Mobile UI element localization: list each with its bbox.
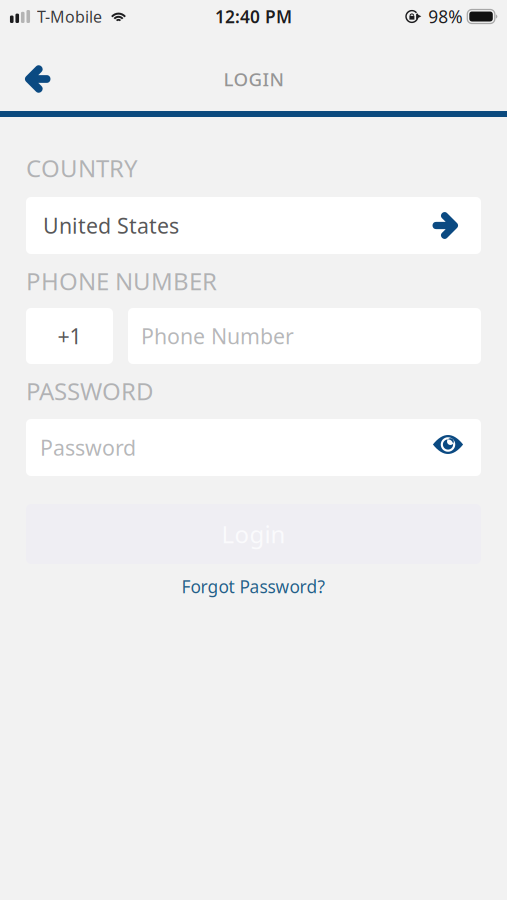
staticText: Login xyxy=(221,518,285,550)
staticText: Phone Number xyxy=(141,322,294,350)
staticText: 12:40 PM xyxy=(215,5,292,28)
staticText: United States xyxy=(43,211,179,240)
button[interactable]: Back xyxy=(9,54,67,104)
staticText: COUNTRY xyxy=(26,152,138,184)
staticText: Forgot Password? xyxy=(181,575,325,598)
button[interactable]: Forgot Password? xyxy=(171,570,335,603)
staticText: T-Mobile xyxy=(37,6,102,27)
button[interactable]: United States xyxy=(26,197,481,254)
staticText: 98% xyxy=(428,5,462,28)
staticText: Password xyxy=(40,433,136,462)
staticText: PASSWORD xyxy=(26,375,154,407)
staticText: LOGIN xyxy=(223,67,283,91)
button[interactable]: Show password xyxy=(429,429,467,465)
staticText: PHONE NUMBER xyxy=(26,265,217,297)
staticText: +1 xyxy=(57,322,81,350)
